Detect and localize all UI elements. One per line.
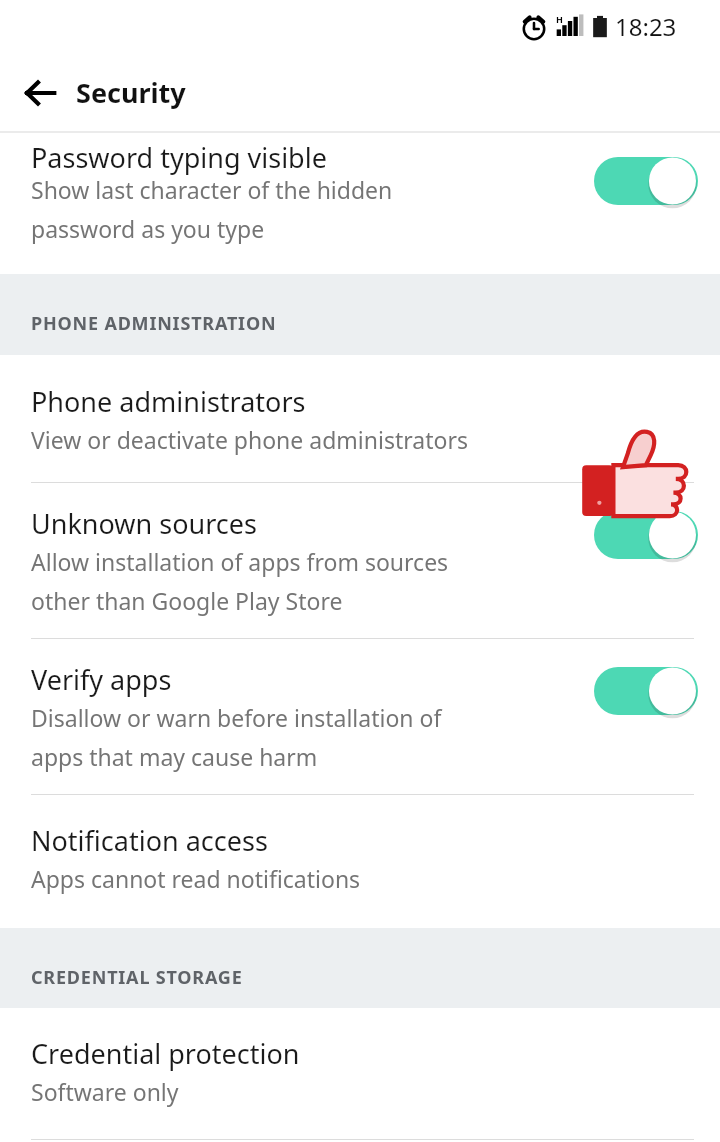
staticText: apps that may cause harm: [31, 741, 318, 772]
staticText: PHONE ADMINISTRATION: [31, 311, 277, 336]
staticText: Phone administrators: [31, 383, 306, 420]
staticText: View or deactivate phone administrators: [31, 424, 468, 455]
staticText: Allow installation of apps from sources: [31, 546, 449, 577]
button[interactable]: Back: [14, 67, 66, 119]
staticText: Credential protection: [31, 1035, 300, 1072]
staticText: Verify apps: [31, 661, 172, 698]
staticText: Unknown sources: [31, 505, 257, 542]
staticText: password as you type: [31, 213, 265, 244]
staticText: Apps cannot read notifications: [31, 863, 361, 894]
button[interactable]: Unknown sources: [0, 483, 720, 638]
button[interactable]: Toggle: [594, 511, 698, 559]
staticText: 18:23: [615, 10, 677, 43]
staticText: Notification access: [31, 822, 268, 859]
button[interactable]: Phone administrators: [0, 355, 720, 482]
staticText: Disallow or warn before installation of: [31, 702, 442, 733]
button[interactable]: Notification access: [0, 795, 720, 922]
button[interactable]: Verify apps: [0, 639, 720, 794]
button[interactable]: Credential protection: [0, 1008, 720, 1139]
staticText: Show last character of the hidden: [31, 174, 393, 205]
staticText: H: [556, 13, 563, 25]
button[interactable]: Toggle: [594, 157, 698, 205]
staticText: CREDENTIAL STORAGE: [31, 965, 243, 990]
button[interactable]: Password typing visible: [0, 133, 720, 244]
button[interactable]: Toggle: [594, 667, 698, 715]
staticText: Password typing visible: [31, 139, 327, 175]
staticText: other than Google Play Store: [31, 585, 343, 616]
staticText: Software only: [31, 1076, 179, 1107]
staticText: Security: [76, 74, 186, 111]
